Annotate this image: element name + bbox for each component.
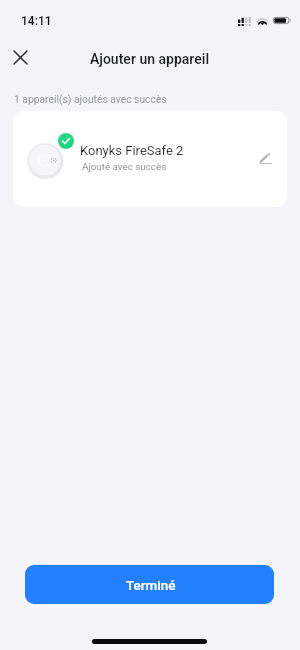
staticText: Ajouter un appareil xyxy=(90,51,210,67)
button[interactable]: Close xyxy=(7,44,34,71)
staticText: Ajouté avec succès xyxy=(82,161,167,172)
button[interactable]: Rename device xyxy=(251,144,279,172)
staticText: Konyks FireSafe 2 xyxy=(80,143,184,158)
button[interactable]: Konyks FireSafe 2 xyxy=(13,111,287,207)
staticText: Terminé xyxy=(126,577,176,593)
staticText: 14:11 xyxy=(21,14,52,28)
button[interactable]: Terminé xyxy=(25,565,274,604)
staticText: 1 appareil(s) ajoutés avec succès xyxy=(14,93,167,105)
